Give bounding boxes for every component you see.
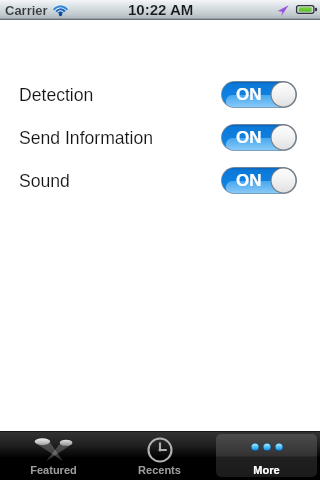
staticText: Featured [30, 464, 77, 476]
staticText: Detection [19, 85, 94, 105]
button[interactable]: More [216, 434, 317, 477]
button[interactable]: Toggle on [221, 124, 297, 151]
button[interactable]: Featured [3, 434, 103, 477]
staticText: 10:22 AM [128, 1, 194, 18]
staticText: More [253, 464, 280, 476]
button[interactable]: Recents [109, 434, 210, 477]
staticText: ON [236, 171, 262, 190]
staticText: Sound [19, 171, 70, 191]
button[interactable]: Toggle on [221, 167, 297, 194]
staticText: Carrier [5, 3, 48, 18]
staticText: Recents [138, 464, 181, 476]
button[interactable]: Send Information [0, 124, 320, 151]
button[interactable]: Toggle on [221, 81, 297, 108]
staticText: Send Information [19, 128, 153, 148]
staticText: ON [236, 128, 262, 147]
button[interactable]: Detection [0, 81, 320, 108]
staticText: ON [236, 85, 262, 104]
button[interactable]: Sound [0, 167, 320, 194]
